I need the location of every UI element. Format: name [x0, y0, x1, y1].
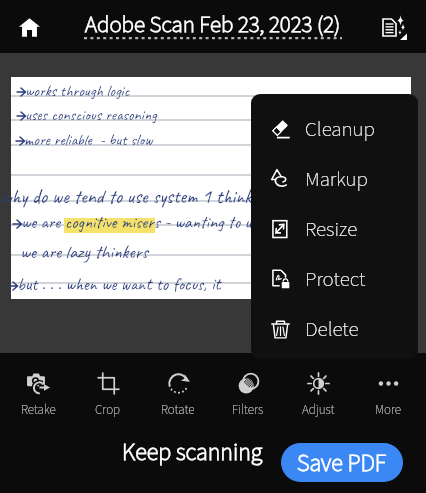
button[interactable]: Delete: [251, 304, 418, 354]
staticText: more reliable - but slow: [24, 130, 153, 150]
staticText: why do we tend to use system 1 thinking: [1, 184, 272, 209]
button[interactable]: Cleanup: [251, 104, 418, 154]
staticText: Adjust: [302, 401, 335, 418]
staticText: Delete: [305, 314, 359, 344]
button[interactable]: Adobe Scan Feb 23, 2023 (2): [84, 7, 342, 47]
staticText: Keep scanning: [122, 435, 263, 469]
button[interactable]: Enhance: [372, 5, 416, 49]
button[interactable]: Filters: [216, 362, 280, 418]
staticText: Resize: [305, 214, 358, 244]
staticText: More: [375, 401, 402, 418]
button[interactable]: Home: [7, 5, 51, 49]
staticText: we are lazy thinkers: [20, 240, 149, 264]
staticText: Cleanup: [305, 114, 375, 144]
button[interactable]: Retake: [6, 362, 70, 418]
button[interactable]: Save PDF: [281, 443, 403, 482]
staticText: Filters: [232, 401, 264, 418]
staticText: Retake: [21, 401, 56, 418]
staticText: works through logic: [25, 81, 130, 101]
staticText: Adobe Scan Feb 23, 2023 (2): [85, 8, 341, 41]
button[interactable]: Crop: [76, 362, 140, 418]
staticText: Crop: [95, 401, 121, 418]
button[interactable]: More: [356, 362, 420, 418]
staticText: Markup: [305, 164, 368, 194]
staticText: Protect: [305, 264, 366, 294]
button[interactable]: Markup: [251, 154, 418, 204]
button[interactable]: Keep scanning: [112, 422, 273, 482]
staticText: uses conscious reasoning: [25, 105, 157, 125]
button[interactable]: Rotate: [146, 362, 210, 418]
button[interactable]: Resize: [251, 204, 418, 254]
staticText: but . . . when we want to focus, it: [17, 273, 221, 296]
staticText: we are cognitive misers - wanting to use…: [21, 211, 282, 234]
staticText: Rotate: [161, 401, 195, 418]
button[interactable]: Adjust: [286, 362, 350, 418]
button[interactable]: Protect: [251, 254, 418, 304]
staticText: Save PDF: [297, 446, 387, 480]
